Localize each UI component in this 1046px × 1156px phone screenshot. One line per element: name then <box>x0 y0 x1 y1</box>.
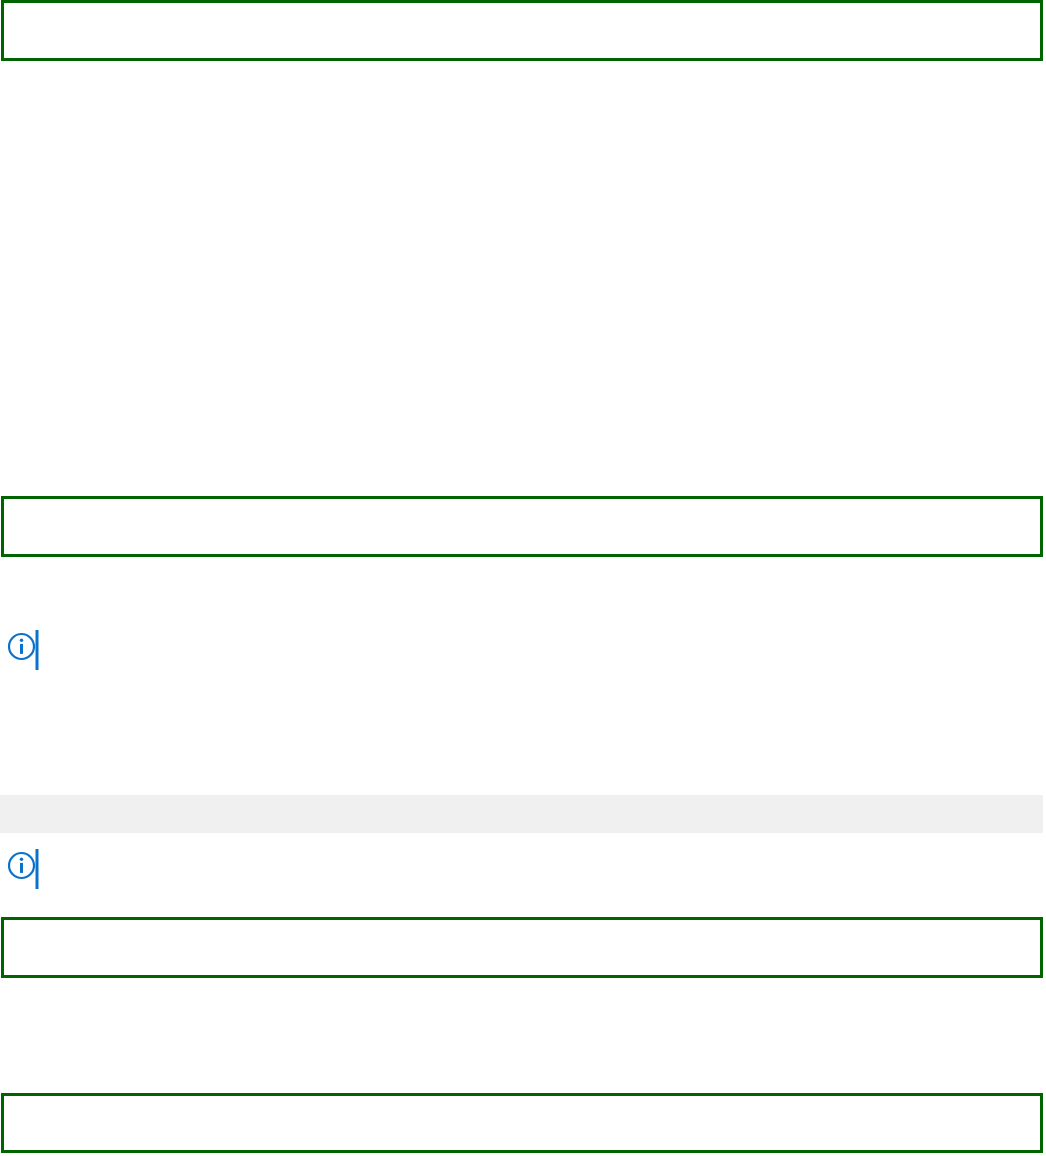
button[interactable]: Text field 1 <box>1 0 1043 61</box>
button[interactable]: Text field 3 <box>1 917 1043 978</box>
button[interactable]: Information <box>7 850 41 894</box>
button[interactable]: Text field 2 <box>1 496 1043 557</box>
button[interactable]: Text field 4 <box>1 1093 1043 1153</box>
button[interactable]: Information <box>7 631 41 675</box>
